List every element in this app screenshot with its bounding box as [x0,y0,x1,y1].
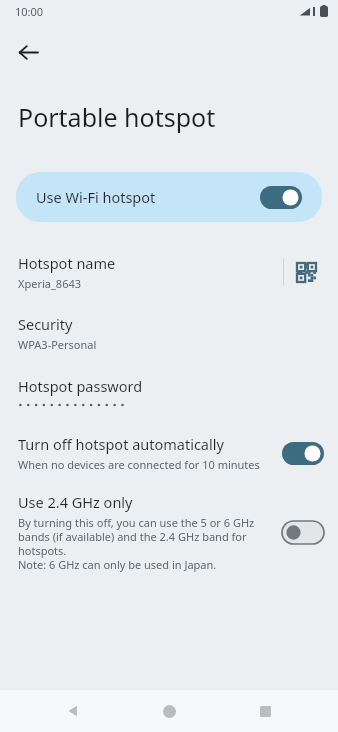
staticText: Use Wi-Fi hotspot [36,187,260,207]
button[interactable]: Home [146,690,192,732]
button[interactable]: Share hotspot QR code [284,250,328,294]
staticText: WPA3-Personal [18,337,97,352]
staticText: Use 2.4 GHz only [18,492,133,512]
staticText: 10:00 [15,4,44,19]
button[interactable]: Hotspot name [0,248,338,296]
button[interactable]: Use Wi-Fi hotspot [16,172,322,222]
staticText: Hotspot name [18,253,116,273]
button[interactable]: Security [0,312,338,354]
staticText: By turning this off, you can use the 5 o… [18,515,255,572]
button[interactable]: Recent apps [242,690,288,732]
staticText: When no devices are connected for 10 min… [18,457,260,472]
button[interactable]: Back [50,690,96,732]
staticText: Hotspot password [18,376,143,396]
staticText: Xperia_8643 [18,276,82,291]
button[interactable]: Hotspot password [0,374,338,410]
button[interactable]: Turn off hotspot automatically [0,432,338,474]
button[interactable]: Back [6,30,50,74]
staticText: Turn off hotspot automatically [18,434,224,454]
button[interactable]: Use 2.4 GHz only [0,490,338,574]
staticText: Security [18,314,73,334]
staticText: Portable hotspot [18,100,216,134]
